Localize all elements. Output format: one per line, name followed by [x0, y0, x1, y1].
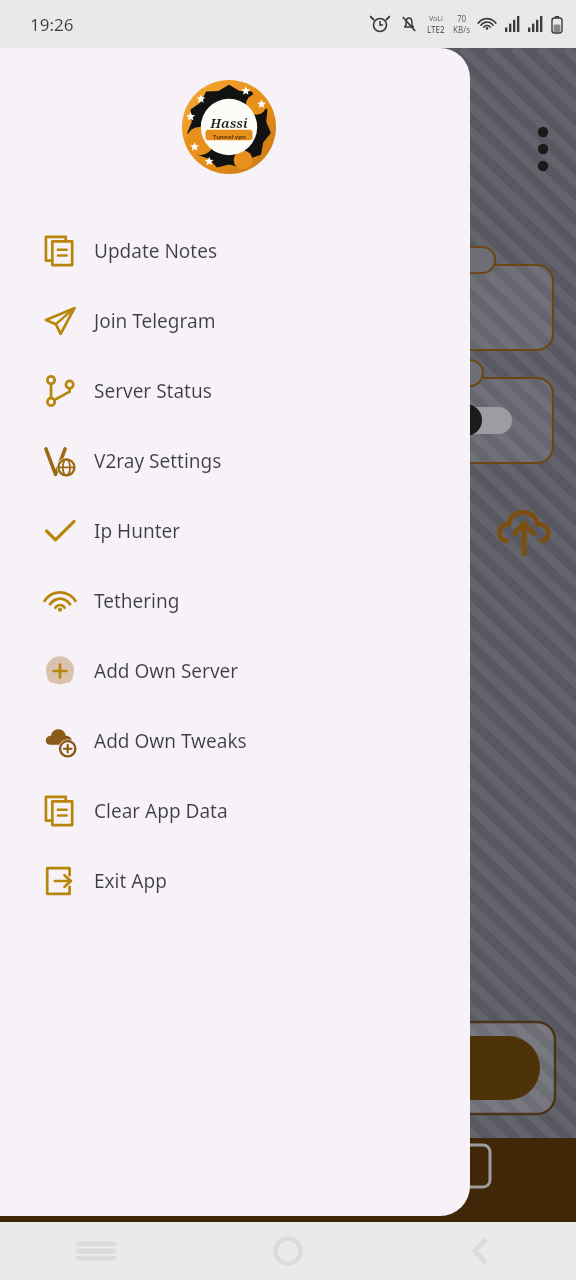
staticText: Ip Hunter	[94, 518, 181, 544]
button[interactable]: V2ray Settings	[0, 426, 470, 496]
staticText: VoLi	[429, 14, 443, 24]
button[interactable]: Server Status	[0, 356, 470, 426]
button[interactable]: Recents	[0, 1222, 192, 1280]
staticText: Join Telegram	[94, 308, 216, 334]
button[interactable]: Clear App Data	[0, 776, 470, 846]
button[interactable]: Update Notes	[0, 216, 470, 286]
staticText: LTE2	[427, 24, 445, 35]
staticText: KB/s	[453, 24, 470, 35]
button[interactable]: Add Own Server	[0, 636, 470, 706]
staticText: Tethering	[94, 588, 180, 614]
staticText: 19:26	[30, 13, 74, 36]
staticText: Hassi	[210, 114, 248, 132]
staticText: Add Own Server	[94, 658, 239, 684]
staticText: Clear App Data	[94, 798, 228, 824]
button[interactable]: Ip Hunter	[0, 496, 470, 566]
button[interactable]: Add Own Tweaks	[0, 706, 470, 776]
staticText: Add Own Tweaks	[94, 728, 247, 754]
button[interactable]: Join Telegram	[0, 286, 470, 356]
button[interactable]: Exit App	[0, 846, 470, 916]
staticText: Update Notes	[94, 238, 218, 264]
staticText: Server Status	[94, 378, 212, 404]
staticText: Tunnel vpn	[213, 133, 246, 141]
button[interactable]: Tethering	[0, 566, 470, 636]
staticText: Exit App	[94, 868, 167, 894]
staticText: V2ray Settings	[94, 448, 222, 474]
staticText: 70	[457, 13, 467, 24]
